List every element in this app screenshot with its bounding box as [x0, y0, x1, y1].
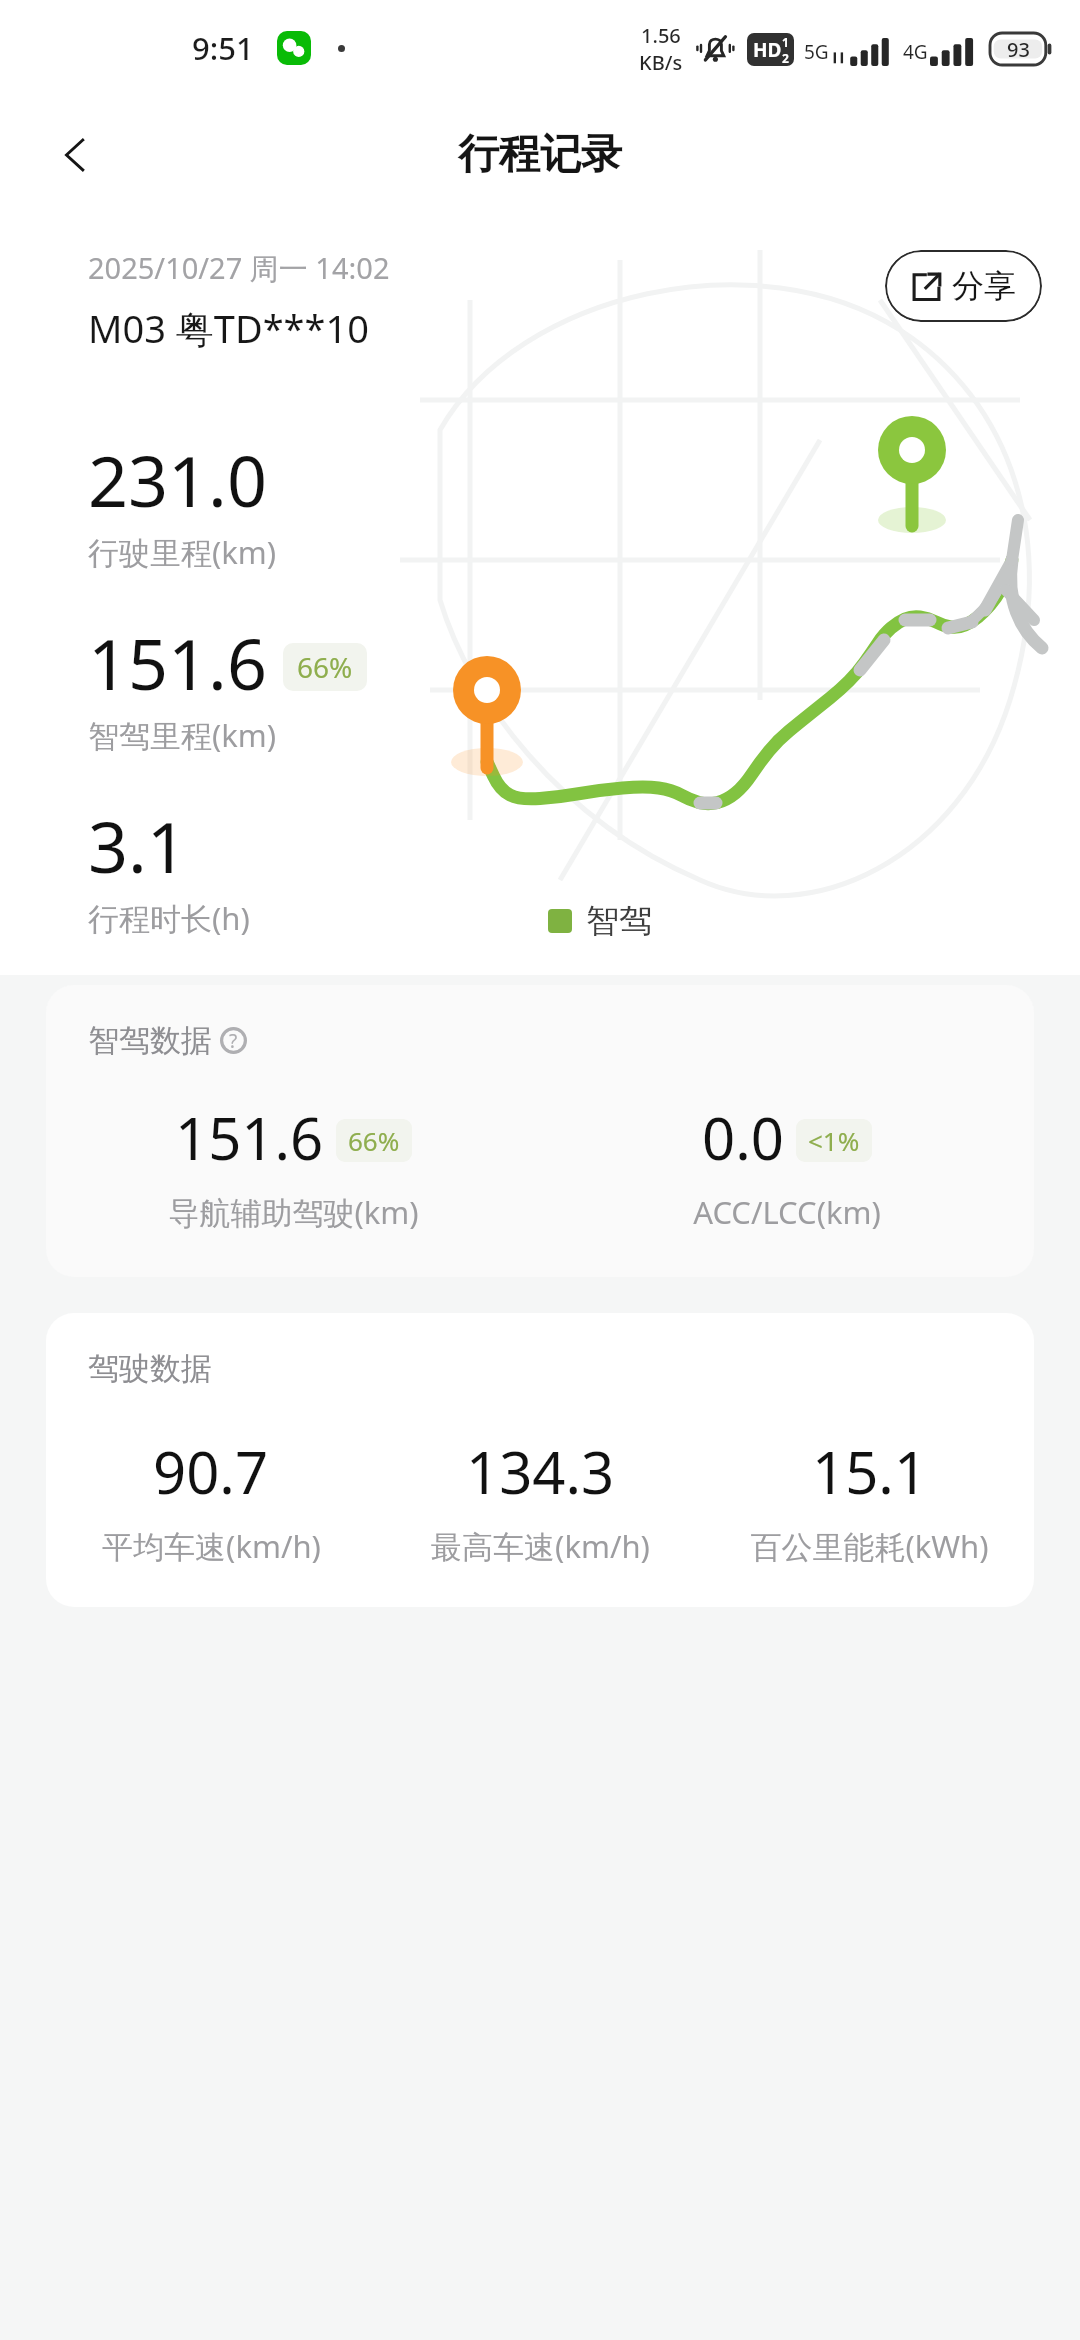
staticText: 行程时长(h) — [88, 897, 250, 939]
staticText: 1 — [782, 34, 789, 50]
staticText: 分享 — [952, 266, 1016, 306]
staticText: 驾驶数据 — [88, 1349, 212, 1388]
button[interactable]: 返回 — [36, 115, 116, 195]
staticText: ? — [229, 1028, 238, 1054]
staticText: 2 — [782, 50, 789, 66]
staticText: 15.1 — [812, 1432, 928, 1511]
staticText: 平均车速(km/h) — [102, 1525, 321, 1567]
button[interactable]: 驾驶数据 — [46, 1313, 1034, 1607]
staticText: 134.3 — [466, 1432, 615, 1511]
staticText: 66% — [297, 648, 353, 686]
staticText: 151.6 — [175, 1098, 324, 1177]
staticText: HD — [753, 37, 782, 63]
staticText: 3.1 — [88, 798, 187, 893]
staticText: <1% — [808, 1123, 860, 1158]
staticText: 4G — [903, 39, 928, 65]
staticText: 2025/10/27 周一 14:02 — [88, 248, 390, 288]
staticText: 66% — [348, 1123, 400, 1158]
staticText: 行程记录 — [458, 129, 622, 181]
staticText: 151.6 — [88, 615, 267, 710]
staticText: ACC/LCC(km) — [693, 1191, 881, 1233]
staticText: 9:51 — [192, 27, 254, 69]
staticText: 231.0 — [88, 432, 267, 527]
staticText: 智驾里程(km) — [88, 714, 277, 756]
staticText: 90.7 — [153, 1432, 269, 1511]
staticText: 0.0 — [702, 1098, 784, 1177]
staticText: 智驾数据 — [88, 1021, 212, 1060]
staticText: 5G — [804, 39, 829, 65]
staticText: 智驾 — [586, 900, 652, 942]
staticText: 最高车速(km/h) — [431, 1525, 650, 1567]
staticText: M03 粤TD***10 — [88, 302, 369, 354]
button[interactable]: 分享 — [885, 250, 1042, 322]
staticText: 导航辅助驾驶(km) — [168, 1191, 419, 1233]
button[interactable]: 智驾数据 — [46, 985, 1034, 1277]
staticText: 93 — [1007, 36, 1030, 63]
staticText: 百公里能耗(kWh) — [750, 1525, 989, 1567]
staticText: KB/s — [639, 49, 683, 76]
staticText: 1.56 — [641, 22, 681, 49]
staticText: 行驶里程(km) — [88, 531, 277, 573]
